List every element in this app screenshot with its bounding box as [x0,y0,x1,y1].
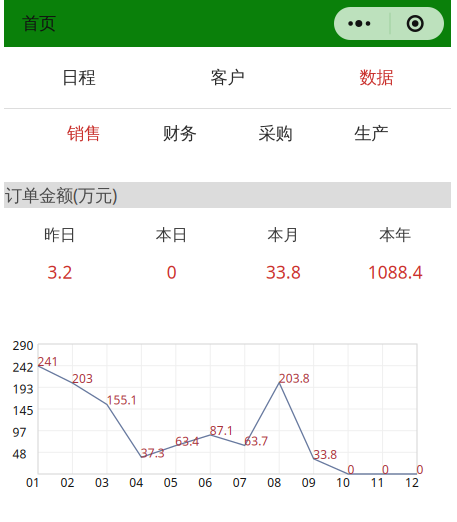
button[interactable]: 财务 [132,109,228,158]
staticText: 日程 [61,67,95,88]
staticText: 12 [405,474,419,490]
staticText: 63.7 [244,433,268,449]
staticText: 数据 [359,67,393,88]
staticText: 昨日 [44,225,76,245]
staticText: 03 [95,474,109,490]
staticText: 0 [382,461,389,477]
staticText: 06 [198,474,212,490]
button[interactable]: 日程 [4,47,153,108]
staticText: 0 [416,461,423,477]
staticText: 09 [302,474,316,490]
staticText: 193 [12,381,33,397]
button[interactable]: More options [334,7,444,40]
staticText: 242 [12,359,33,375]
staticText: 02 [60,474,74,490]
staticText: 290 [12,337,33,353]
staticText: 241 [37,353,58,369]
button[interactable]: 客户 [153,47,302,108]
staticText: 销售 [67,123,101,144]
staticText: 145 [12,402,33,418]
staticText: 33.8 [313,446,337,462]
staticText: 财务 [163,123,197,144]
staticText: 203.8 [279,370,310,386]
staticText: 07 [233,474,247,490]
staticText: 订单金额(万元) [5,183,117,206]
staticText: 04 [129,474,143,490]
staticText: 203 [72,370,93,386]
staticText: 37.3 [141,445,165,461]
staticText: 生产 [354,123,388,144]
staticText: 本日 [156,225,188,245]
staticText: 本年 [379,225,411,245]
staticText: 08 [267,474,281,490]
button[interactable]: 采购 [227,109,323,158]
staticText: 1088.4 [368,260,423,283]
staticText: 采购 [258,123,292,144]
staticText: 01 [26,474,40,490]
staticText: 87.1 [210,422,234,438]
staticText: 0 [348,461,355,477]
staticText: 客户 [210,67,244,88]
staticText: 48 [12,446,26,462]
staticText: 33.8 [266,260,301,283]
button[interactable]: 销售 [36,109,132,158]
staticText: 本月 [267,225,299,245]
staticText: 11 [370,474,384,490]
staticText: 0 [167,260,177,283]
staticText: 97 [12,424,26,440]
staticText: 05 [164,474,178,490]
staticText: 首页 [22,13,56,34]
staticText: 63.4 [175,433,199,449]
staticText: 155.1 [106,392,137,408]
staticText: 3.2 [47,260,72,283]
button[interactable]: 生产 [323,109,419,158]
staticText: 10 [336,474,350,490]
button[interactable]: 数据 [302,47,451,108]
